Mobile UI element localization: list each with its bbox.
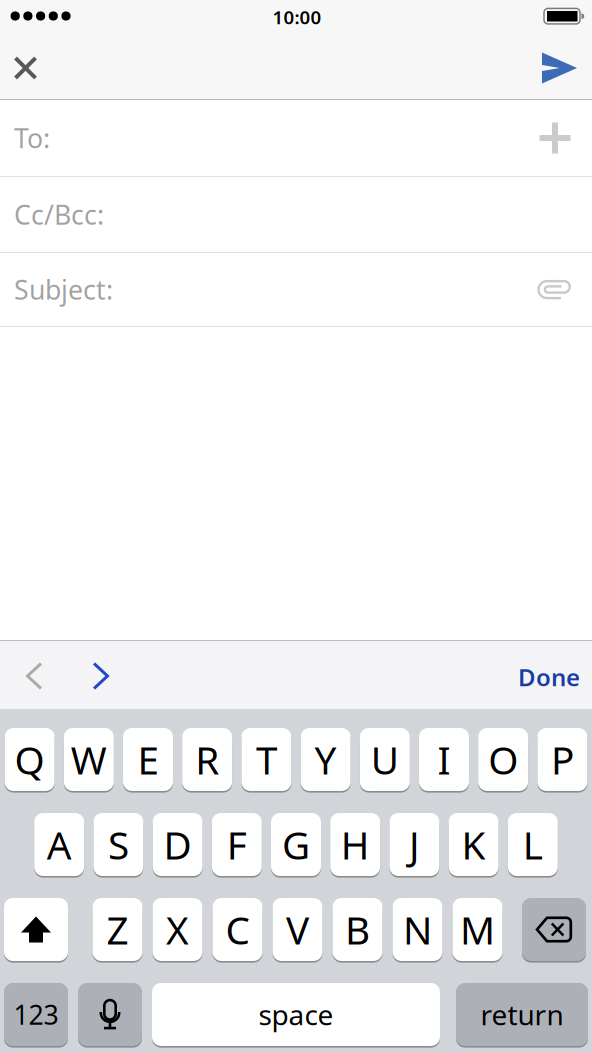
staticText: Q [15,734,45,785]
staticText: K [462,819,486,870]
button[interactable]: M [452,897,502,962]
staticText: V [286,904,309,955]
staticText: To: [14,120,50,156]
staticText: M [460,904,495,955]
staticText: N [403,904,432,955]
button[interactable]: N [392,897,442,962]
button[interactable]: F [212,812,262,877]
staticText: Cc/Bcc: [14,197,104,232]
staticText: E [137,734,158,785]
button[interactable]: Add recipient [530,113,580,163]
button[interactable]: T [241,727,291,792]
button[interactable]: K [449,812,499,877]
button[interactable]: Send [537,46,581,90]
staticText: space [258,996,333,1033]
staticText: Y [315,734,337,785]
staticText: H [341,819,370,870]
staticText: 10:00 [272,5,321,29]
staticText: return [480,996,563,1033]
button[interactable]: Next field [79,654,123,698]
button[interactable]: 123 [4,982,68,1047]
button[interactable]: Q [5,727,55,792]
staticText: I [437,734,450,785]
staticText: W [71,734,107,785]
button[interactable]: return [456,982,588,1047]
button[interactable]: X [152,897,202,962]
button[interactable]: Close [3,46,47,90]
button[interactable]: C [212,897,262,962]
button[interactable]: Z [92,897,142,962]
button[interactable]: A [34,812,84,877]
button[interactable]: L [508,812,558,877]
staticText: R [195,734,219,785]
button[interactable]: U [360,727,410,792]
staticText: F [227,819,247,870]
staticText: S [108,819,129,870]
staticText: D [164,819,192,870]
button[interactable]: O [478,727,528,792]
staticText: G [282,819,310,870]
staticText: T [256,734,277,785]
button[interactable]: Y [301,727,351,792]
button[interactable]: J [389,812,439,877]
button[interactable]: space [152,982,440,1047]
button[interactable]: W [64,727,114,792]
button[interactable]: Shift [4,897,68,962]
button[interactable]: I [419,727,469,792]
button[interactable]: D [153,812,203,877]
staticText: L [523,819,543,870]
button[interactable]: Delete [522,897,586,962]
staticText: Subject: [14,272,113,307]
staticText: B [345,904,370,955]
button[interactable]: S [93,812,143,877]
staticText: Z [106,904,128,955]
button[interactable]: Subject: [0,253,592,326]
staticText: O [488,734,518,785]
staticText: 123 [13,997,58,1032]
staticText: U [371,734,399,785]
button[interactable]: G [271,812,321,877]
staticText: X [166,904,189,955]
button[interactable]: Cc/Bcc: [0,177,592,252]
staticText: P [551,734,574,785]
staticText: A [47,819,72,870]
button[interactable]: To: [0,100,592,176]
button[interactable]: R [182,727,232,792]
button[interactable]: P [537,727,587,792]
button[interactable]: Dictate [78,982,142,1047]
staticText: C [225,904,249,955]
staticText: J [409,819,420,870]
button[interactable]: Attach file [529,264,579,314]
button[interactable]: E [123,727,173,792]
button[interactable]: Done [518,661,580,693]
button[interactable]: Previous field [12,654,56,698]
staticText: Done [518,661,580,693]
button[interactable]: V [272,897,322,962]
button[interactable]: H [330,812,380,877]
button[interactable]: B [332,897,382,962]
